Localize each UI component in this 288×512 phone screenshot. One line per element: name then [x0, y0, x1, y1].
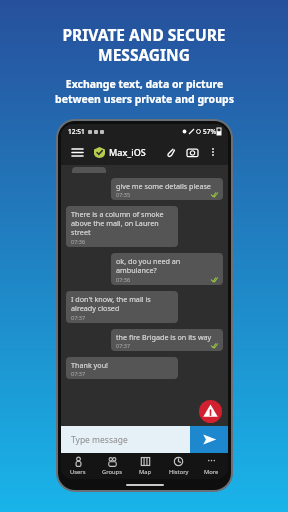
staticText: Type message: [71, 434, 128, 446]
staticText: the fire Brigade is on its way: [116, 332, 212, 342]
staticText: There is a column of smoke above the mal…: [71, 209, 164, 238]
staticText: PRIVATE AND SECURE MESSAGING: [62, 24, 226, 65]
button[interactable]: Send: [190, 426, 228, 453]
button[interactable]: the fire Brigade is on its way: [111, 329, 223, 351]
staticText: 07:37: [71, 314, 86, 321]
staticText: Groups: [102, 468, 122, 476]
staticText: 07:37: [71, 370, 86, 377]
button[interactable]: Attach: [162, 144, 178, 160]
button[interactable]: give me some details please: [111, 178, 223, 200]
staticText: 57%: [203, 127, 216, 136]
button[interactable]: Emergency alert: [199, 400, 222, 423]
staticText: More: [204, 468, 219, 476]
staticText: 07:35: [116, 191, 131, 198]
staticText: Thank you!: [71, 360, 109, 370]
staticText: Max_iOS: [109, 146, 146, 158]
staticText: Exchange text, data or picture between u…: [55, 77, 234, 106]
staticText: ok, do you need an ambulance?: [116, 256, 181, 276]
staticText: 07:37: [116, 342, 131, 349]
staticText: 07:36: [116, 276, 131, 283]
button[interactable]: Type message: [61, 426, 190, 453]
staticText: I don't know, the mall is already closed: [71, 294, 151, 314]
staticText: 07:36: [71, 238, 86, 245]
staticText: Users: [70, 468, 86, 476]
button[interactable]: Camera: [184, 144, 200, 160]
staticText: History: [169, 468, 189, 476]
button[interactable]: Map: [129, 453, 162, 479]
button[interactable]: There is a column of smoke above the mal…: [66, 206, 178, 247]
staticText: 12:51: [68, 127, 85, 136]
button[interactable]: Menu: [69, 144, 85, 160]
staticText: give me some details please: [116, 181, 211, 191]
button[interactable]: More: [195, 453, 228, 479]
staticText: Map: [139, 468, 152, 476]
button[interactable]: Thank you!: [66, 357, 178, 379]
button[interactable]: Users: [61, 453, 95, 479]
button[interactable]: Groups: [95, 453, 129, 479]
button[interactable]: History: [162, 453, 195, 479]
button[interactable]: ok, do you need an ambulance?: [111, 253, 223, 285]
button[interactable]: I don't know, the mall is already closed: [66, 291, 178, 323]
button[interactable]: More options: [206, 145, 220, 159]
